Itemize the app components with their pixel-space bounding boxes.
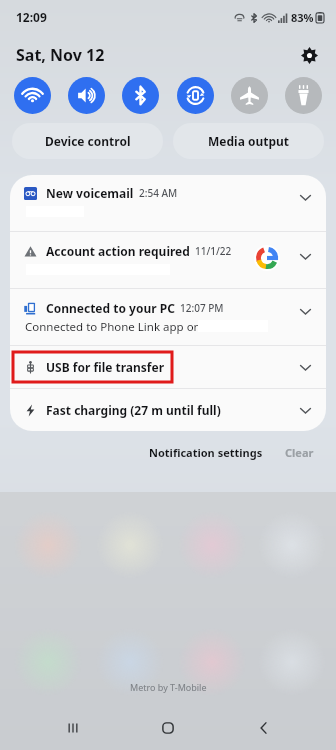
staticText: Clear xyxy=(285,445,314,460)
staticText: Connected to Phone Link app on xyxy=(25,319,201,335)
staticText: USB for file transfer xyxy=(46,359,165,375)
button[interactable]: Wi-Fi xyxy=(14,77,51,114)
button[interactable]: New voicemail xyxy=(10,175,326,231)
staticText: Media output xyxy=(208,133,290,149)
button[interactable]: Bluetooth xyxy=(122,77,159,114)
staticText: 2:54 AM xyxy=(139,186,178,200)
button[interactable]: Flashlight xyxy=(285,77,322,114)
button[interactable]: Expand xyxy=(294,399,316,421)
staticText: Fast charging (27 m until full) xyxy=(46,402,221,418)
staticText: New voicemail xyxy=(46,185,134,201)
staticText: Notification settings xyxy=(149,445,263,460)
staticText: Sat, Nov 12 xyxy=(16,44,105,66)
button[interactable]: USB for file transfer xyxy=(10,346,326,388)
button[interactable]: Connected to your PC xyxy=(10,289,326,345)
button[interactable]: Notification settings xyxy=(143,439,269,466)
button[interactable]: Expand xyxy=(294,356,316,378)
button[interactable]: Settings xyxy=(296,42,322,68)
staticText: 12:09 xyxy=(16,9,47,25)
staticText: Device control xyxy=(45,133,131,149)
button[interactable]: Sound xyxy=(68,77,105,114)
button[interactable]: Fast charging (27 m until full) xyxy=(10,389,326,431)
staticText: Account action required xyxy=(46,243,190,259)
button[interactable]: Auto rotate xyxy=(177,77,214,114)
button[interactable]: Recents xyxy=(50,706,96,750)
button[interactable]: Airplane mode xyxy=(231,77,268,114)
staticText: Metro by T-Mobile xyxy=(130,681,207,693)
staticText: 83% xyxy=(291,10,314,25)
staticText: Connected to your PC xyxy=(46,300,175,316)
button[interactable]: Expand xyxy=(294,245,316,267)
button[interactable]: Clear xyxy=(279,439,320,466)
button[interactable]: Device control xyxy=(12,123,163,159)
button[interactable]: Home xyxy=(145,706,191,750)
button[interactable]: Media output xyxy=(173,123,324,159)
button[interactable]: Account action required xyxy=(10,232,326,288)
button[interactable]: Expand xyxy=(294,300,316,322)
staticText: 11/1/22 xyxy=(195,244,232,258)
staticText: 12:07 PM xyxy=(180,301,224,315)
button[interactable]: Expand xyxy=(294,186,316,208)
button[interactable]: Back xyxy=(241,706,287,750)
